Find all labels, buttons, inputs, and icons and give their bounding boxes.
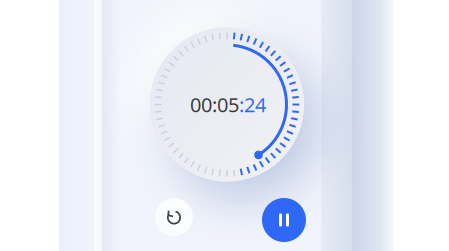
staticText: :24 [239,91,266,118]
button[interactable]: Reset [155,198,193,236]
staticText: 00:05 [190,91,239,118]
button[interactable]: Pause [262,198,306,242]
